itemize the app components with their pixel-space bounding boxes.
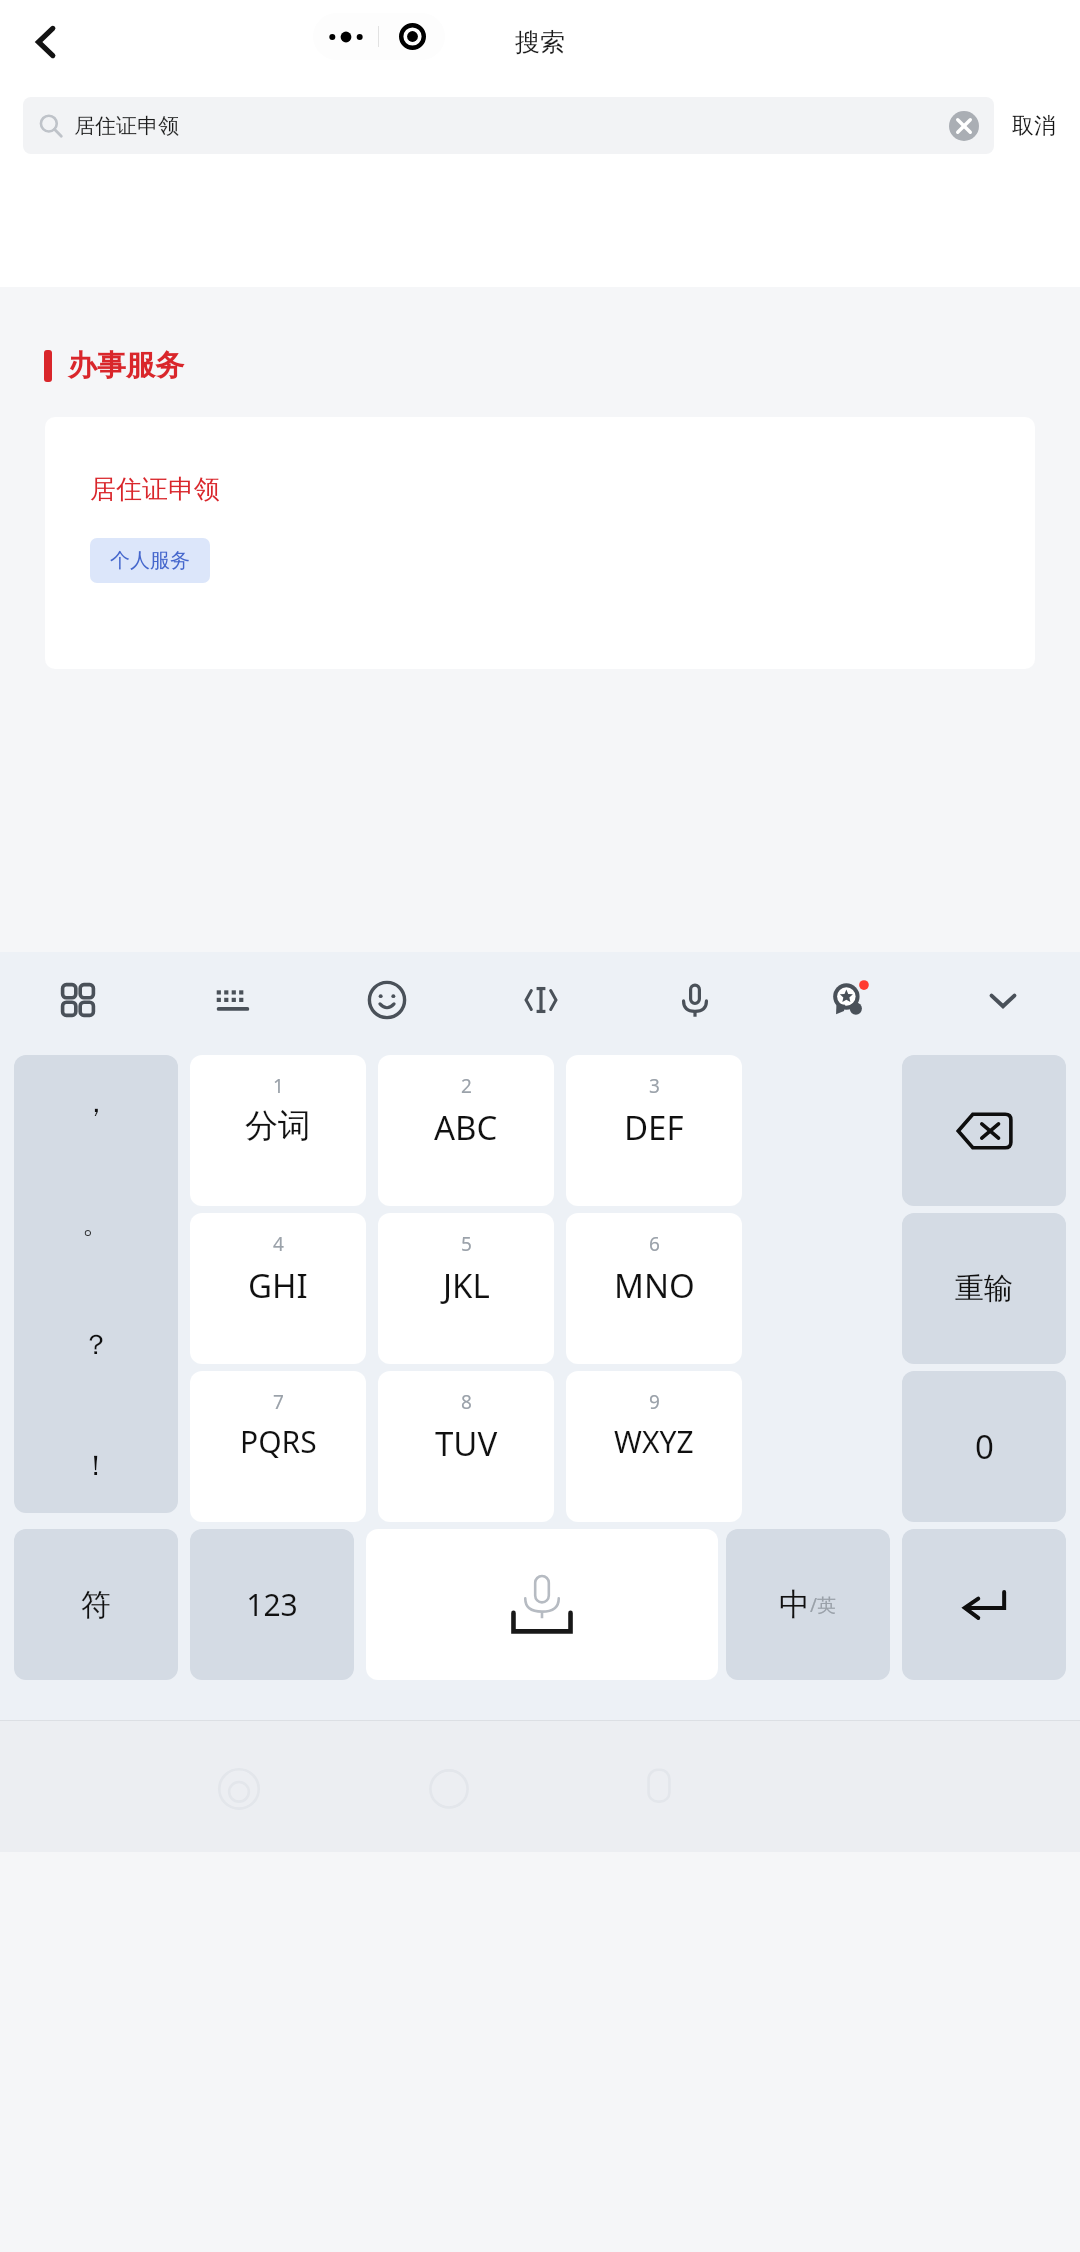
- button[interactable]: DEF: [566, 1055, 742, 1206]
- other: Close: [379, 13, 445, 60]
- staticText: WXYZ: [614, 1421, 694, 1462]
- button[interactable]: 居住证申领: [45, 417, 1035, 669]
- staticText: 搜索: [515, 27, 565, 58]
- staticText: 取消: [1012, 112, 1056, 140]
- staticText: 办事服务: [68, 347, 184, 384]
- button[interactable]: 符: [14, 1529, 178, 1680]
- staticText: ？: [82, 1327, 110, 1362]
- staticText: 3: [649, 1073, 660, 1099]
- staticText: 居住证申领: [74, 113, 179, 139]
- staticText: TUV: [435, 1421, 498, 1466]
- button[interactable]: GHI: [190, 1213, 366, 1364]
- button[interactable]: Edit text: [464, 952, 618, 1048]
- staticText: 5: [461, 1231, 472, 1257]
- staticText: 8: [461, 1389, 472, 1415]
- button[interactable]: WXYZ: [566, 1371, 742, 1522]
- button[interactable]: ABC: [378, 1055, 554, 1206]
- button[interactable]: 123: [190, 1529, 354, 1680]
- staticText: ABC: [434, 1105, 498, 1150]
- staticText: DEF: [624, 1105, 684, 1150]
- button[interactable]: Voice input: [618, 952, 772, 1048]
- staticText: 分词: [245, 1105, 311, 1147]
- button[interactable]: Punctuation: [14, 1055, 178, 1513]
- button[interactable]: Enter: [902, 1529, 1066, 1680]
- staticText: 4: [273, 1231, 284, 1257]
- staticText: ！: [82, 1448, 110, 1483]
- staticText: 123: [246, 1584, 298, 1625]
- staticText: JKL: [443, 1263, 490, 1308]
- button[interactable]: Keyboard layout: [155, 952, 310, 1048]
- button[interactable]: Emoji: [310, 952, 464, 1048]
- staticText: 6: [649, 1231, 660, 1257]
- button[interactable]: Backspace: [902, 1055, 1066, 1206]
- staticText: 9: [649, 1389, 660, 1415]
- staticText: /英: [810, 1592, 837, 1618]
- button[interactable]: Rewards: [772, 952, 926, 1048]
- button[interactable]: More: [313, 13, 445, 60]
- staticText: 中: [779, 1585, 810, 1624]
- staticText: ，: [82, 1085, 110, 1120]
- button[interactable]: Space: [366, 1529, 718, 1680]
- staticText: 个人服务: [110, 548, 190, 573]
- button[interactable]: PQRS: [190, 1371, 366, 1522]
- button[interactable]: TUV: [378, 1371, 554, 1522]
- staticText: 符: [81, 1586, 111, 1624]
- other: More: [313, 13, 378, 60]
- button[interactable]: MNO: [566, 1213, 742, 1364]
- button[interactable]: Hide keyboard: [926, 952, 1080, 1048]
- staticText: 。: [82, 1206, 110, 1241]
- staticText: 1: [273, 1073, 284, 1099]
- button[interactable]: Clear: [942, 104, 986, 148]
- button[interactable]: 取消: [994, 97, 1074, 154]
- button[interactable]: 分词: [190, 1055, 366, 1206]
- button[interactable]: 居住证申领: [23, 97, 994, 154]
- button[interactable]: 0: [902, 1371, 1066, 1522]
- staticText: 2: [461, 1073, 472, 1099]
- button[interactable]: Panels: [0, 952, 155, 1048]
- button[interactable]: JKL: [378, 1213, 554, 1364]
- staticText: 重输: [955, 1270, 1013, 1307]
- staticText: GHI: [248, 1263, 308, 1308]
- staticText: PQRS: [240, 1421, 317, 1462]
- staticText: 0: [975, 1424, 994, 1469]
- staticText: MNO: [614, 1263, 695, 1308]
- staticText: 7: [273, 1389, 284, 1415]
- button[interactable]: Back: [8, 0, 84, 84]
- button[interactable]: 重输: [902, 1213, 1066, 1364]
- button[interactable]: 中英切换: [726, 1529, 890, 1680]
- staticText: 居住证申领: [90, 473, 220, 506]
